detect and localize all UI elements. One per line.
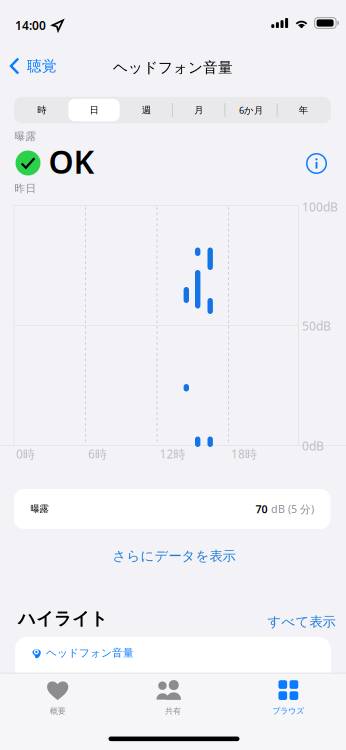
staticText: 概要 bbox=[50, 706, 66, 716]
button[interactable]: 曝露 bbox=[14, 489, 330, 529]
staticText: 6か月 bbox=[239, 104, 263, 116]
staticText: ヘッドフォン音量 bbox=[113, 58, 233, 76]
staticText: 70 bbox=[255, 502, 267, 516]
staticText: ハイライト bbox=[18, 608, 108, 629]
staticText: 曝露 bbox=[14, 130, 36, 143]
staticText: ブラウズ bbox=[272, 706, 304, 716]
button[interactable]: 日 bbox=[68, 99, 120, 121]
button[interactable]: 詳細情報 bbox=[299, 146, 334, 181]
staticText: ヘッドフォン音量 bbox=[46, 646, 134, 660]
button[interactable]: 週 bbox=[121, 99, 172, 121]
staticText: 100dB bbox=[302, 199, 338, 215]
button[interactable]: 6か月 bbox=[225, 99, 277, 121]
staticText: 12時 bbox=[159, 446, 185, 462]
button[interactable]: 共有 bbox=[115, 678, 231, 718]
staticText: 曝露 bbox=[30, 503, 48, 515]
staticText: 18時 bbox=[231, 446, 257, 462]
button[interactable]: さらにデータを表示 bbox=[104, 543, 244, 569]
button[interactable]: ブラウズ bbox=[231, 678, 346, 718]
button[interactable]: 概要 bbox=[0, 678, 115, 718]
staticText: 14:00 bbox=[15, 17, 46, 33]
staticText: dB (5 分) bbox=[271, 502, 314, 516]
staticText: 6時 bbox=[88, 446, 107, 462]
button[interactable]: 月 bbox=[173, 99, 224, 121]
button[interactable]: 聴覚 bbox=[3, 50, 63, 82]
staticText: 月 bbox=[194, 104, 203, 116]
staticText: 週 bbox=[142, 104, 151, 116]
staticText: さらにデータを表示 bbox=[112, 548, 235, 564]
staticText: 50dB bbox=[302, 318, 331, 334]
staticText: 聴覚 bbox=[27, 57, 57, 75]
button[interactable]: 年 bbox=[278, 99, 329, 121]
button[interactable]: すべて表示 bbox=[263, 608, 339, 635]
staticText: 時 bbox=[37, 104, 46, 116]
button[interactable]: 時 bbox=[16, 99, 67, 121]
staticText: OK bbox=[48, 140, 94, 182]
staticText: すべて表示 bbox=[267, 613, 335, 630]
staticText: 0時 bbox=[16, 446, 35, 462]
staticText: 年 bbox=[299, 104, 308, 116]
staticText: 昨日 bbox=[14, 182, 36, 195]
staticText: 共有 bbox=[165, 706, 181, 716]
staticText: 0dB bbox=[302, 438, 324, 454]
staticText: 日 bbox=[89, 104, 98, 116]
button[interactable]: ヘッドフォン音量 bbox=[15, 637, 331, 673]
